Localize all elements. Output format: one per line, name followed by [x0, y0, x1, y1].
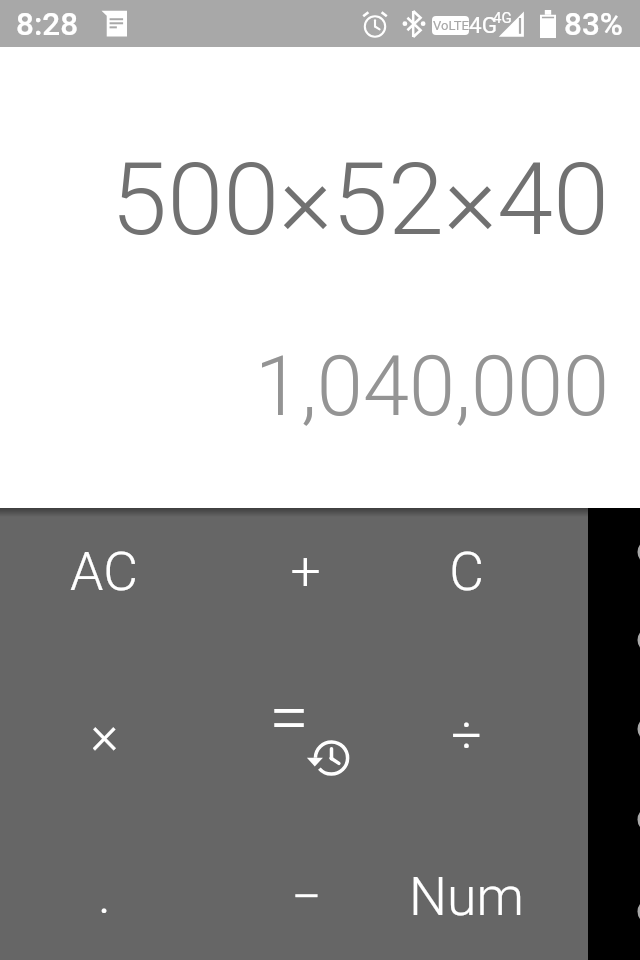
staticText: 83% [564, 6, 623, 43]
button[interactable]: AC [9, 496, 199, 646]
button[interactable]: Num [371, 821, 561, 960]
button[interactable]: ÷ [371, 660, 561, 810]
staticText: . [98, 863, 111, 926]
button[interactable]: History [298, 733, 346, 781]
other: Signal strength [498, 11, 525, 38]
staticText: 4G [493, 9, 512, 27]
button[interactable]: C [371, 496, 561, 646]
staticText: VoLTE [433, 18, 469, 33]
staticText: 8:28 [16, 6, 79, 43]
button[interactable]: 500×52×40 [0, 140, 609, 258]
staticText: Num [409, 865, 524, 928]
button[interactable]: − [211, 821, 401, 960]
staticText: C [449, 540, 484, 603]
staticText: − [291, 865, 322, 928]
button[interactable]: 1,040,000 [0, 338, 609, 435]
other: Bluetooth [402, 10, 426, 38]
button[interactable]: × [9, 659, 199, 809]
staticText: + [290, 540, 321, 603]
staticText: ÷ [451, 704, 482, 767]
button[interactable]: Open side panel [588, 508, 640, 960]
staticText: = [269, 676, 309, 760]
button[interactable]: . [9, 819, 199, 960]
staticText: AC [70, 540, 138, 603]
button[interactable]: + [210, 496, 400, 646]
staticText: × [90, 703, 119, 766]
staticText: 4G [469, 12, 497, 38]
button[interactable]: = [194, 643, 384, 793]
other: Message [101, 10, 127, 37]
